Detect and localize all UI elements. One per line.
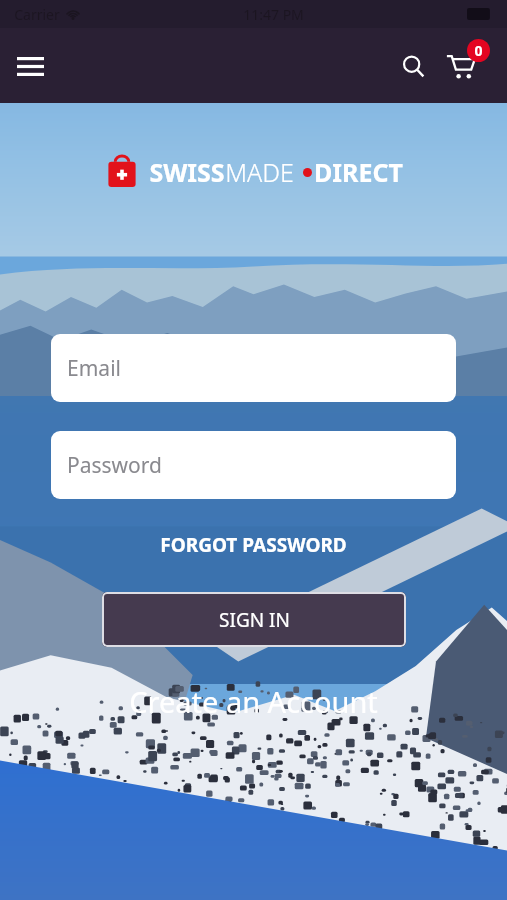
button[interactable]: Menu: [8, 44, 52, 88]
staticText: Email: [67, 354, 121, 383]
staticText: 0: [474, 41, 483, 60]
button[interactable]: Search: [391, 44, 435, 88]
button[interactable]: Email: [51, 334, 456, 402]
button[interactable]: FORGOT PASSWORD: [0, 528, 507, 562]
staticText: Password: [67, 451, 162, 480]
button[interactable]: Cart, 0 items: [437, 42, 485, 90]
button[interactable]: Password: [51, 431, 456, 499]
staticText: 11:47 PM: [243, 5, 304, 24]
staticText: DIRECT: [314, 155, 403, 189]
staticText: SWISS: [149, 155, 225, 189]
button[interactable]: SIGN IN: [102, 592, 406, 647]
staticText: Create an Account: [129, 682, 378, 721]
staticText: SIGN IN: [219, 607, 290, 633]
staticText: Carrier: [14, 5, 60, 24]
staticText: MADE: [225, 155, 294, 189]
staticText: FORGOT PASSWORD: [160, 532, 347, 558]
button[interactable]: Create an Account: [0, 678, 507, 725]
